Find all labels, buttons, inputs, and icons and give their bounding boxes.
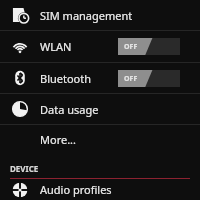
staticText: Data usage <box>40 102 99 117</box>
staticText: WLAN <box>40 39 72 54</box>
staticText: OFF <box>124 74 138 84</box>
button[interactable]: More... <box>0 125 200 154</box>
other: Data usage <box>12 101 28 117</box>
staticText: DEVICE <box>10 163 39 174</box>
other: Bluetooth <box>12 70 28 86</box>
button[interactable]: Data usage <box>0 94 200 124</box>
button[interactable]: SIM management <box>0 0 200 30</box>
staticText: SIM management <box>40 8 133 23</box>
staticText: Audio profiles <box>40 182 112 197</box>
button[interactable]: Toggle off <box>118 70 180 87</box>
staticText: Bluetooth <box>40 71 92 86</box>
button[interactable]: Audio profiles <box>0 179 200 200</box>
staticText: More... <box>40 132 77 147</box>
staticText: OFF <box>124 42 138 52</box>
button[interactable]: Toggle off <box>118 38 180 55</box>
other: Audio profiles <box>12 182 28 198</box>
button[interactable]: WLAN <box>0 31 200 62</box>
other: WLAN <box>12 39 28 55</box>
other: SIM management <box>12 7 28 23</box>
button[interactable]: Bluetooth <box>0 63 200 93</box>
